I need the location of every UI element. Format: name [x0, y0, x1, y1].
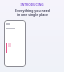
staticText: INTRODUCING	[20, 3, 44, 7]
staticText: Everything you need in one single place	[15, 8, 50, 17]
